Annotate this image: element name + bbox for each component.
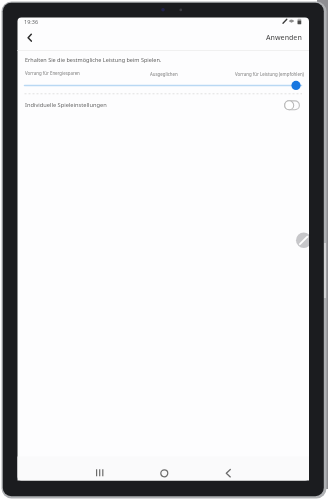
staticText: Ausgeglichen: [150, 71, 178, 77]
button[interactable]: Anwenden: [230, 33, 302, 43]
staticText: 19:36: [24, 18, 39, 25]
staticText: Vorrang für Energiesparen: [25, 70, 80, 76]
button[interactable]: [152, 462, 176, 480]
staticText: Vorrang für Leistung (empfohlen): [235, 71, 304, 77]
button[interactable]: [88, 462, 112, 480]
button[interactable]: [20, 96, 305, 114]
staticText: Erhalten Sie die bestmögliche Leistung b…: [25, 56, 162, 63]
staticText: Anwenden: [266, 33, 302, 43]
button[interactable]: [216, 462, 240, 480]
staticText: Individuelle Spieleinstellungen: [25, 101, 107, 109]
button[interactable]: [294, 231, 309, 249]
button[interactable]: [22, 30, 38, 46]
button[interactable]: [20, 78, 308, 92]
